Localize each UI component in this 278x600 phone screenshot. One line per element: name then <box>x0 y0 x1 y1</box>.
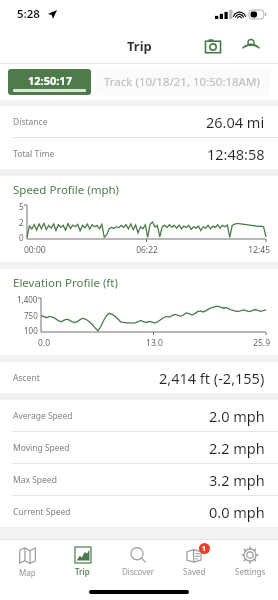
staticText: 5 <box>19 201 24 212</box>
staticText: 0.0 <box>38 337 116 349</box>
staticText: Elevation Profile (ft) <box>13 275 118 291</box>
button[interactable]: 12:50:17 <box>8 69 91 95</box>
button[interactable]: Discover <box>110 540 166 584</box>
staticText: 2.2 mph <box>209 438 265 458</box>
button[interactable]: Distance <box>0 106 278 138</box>
staticText: Saved <box>183 566 206 577</box>
staticText: 26.04 mi <box>206 112 265 132</box>
staticText: Trip <box>75 566 90 577</box>
staticText: 0.0 mph <box>209 502 265 522</box>
staticText: Ascent <box>13 372 40 384</box>
staticText: Map <box>19 567 36 578</box>
staticText: 12:48:58 <box>207 144 265 164</box>
button[interactable]: Map <box>0 540 55 584</box>
staticText: Discover <box>122 566 155 577</box>
staticText: 100 <box>24 325 38 336</box>
staticText: 1 <box>202 544 207 554</box>
staticText: 5:28 <box>17 6 40 22</box>
staticText: Distance <box>13 116 48 128</box>
staticText: 12:50:17 <box>28 73 72 88</box>
staticText: Total Time <box>13 148 55 160</box>
staticText: Current Speed <box>13 506 71 518</box>
button[interactable]: Moving Speed <box>0 432 278 464</box>
button[interactable]: Total Time <box>0 138 278 169</box>
staticText: Max Speed <box>13 474 57 486</box>
staticText: Moving Speed <box>13 442 70 454</box>
button[interactable]: Track (10/18/21, 10:50:18AM) <box>96 69 270 95</box>
staticText: 25.9 <box>193 337 270 349</box>
button[interactable]: Average Speed <box>0 400 278 432</box>
staticText: 0 <box>19 232 24 243</box>
staticText: Average Speed <box>13 410 73 422</box>
staticText: Settings <box>235 566 266 577</box>
button[interactable]: Settings <box>222 540 278 584</box>
staticText: 00:00 <box>24 244 106 256</box>
staticText: 1,400 <box>17 294 38 305</box>
button[interactable]: Locate me <box>238 33 264 59</box>
staticText: 750 <box>24 310 38 321</box>
staticText: Speed Profile (mph) <box>13 182 120 198</box>
staticText: 2 <box>19 217 24 228</box>
button[interactable]: 1 <box>166 540 222 584</box>
staticText: 06:22 <box>106 244 188 256</box>
staticText: 12:45 <box>188 244 270 256</box>
button[interactable]: Max Speed <box>0 464 278 496</box>
staticText: 2,414 ft (-2,155) <box>159 368 265 388</box>
button[interactable]: Trip <box>55 540 110 584</box>
button[interactable]: Camera <box>200 33 226 59</box>
button[interactable]: Current Speed <box>0 496 278 527</box>
staticText: Trip <box>127 37 152 55</box>
staticText: 3.2 mph <box>209 470 265 490</box>
staticText: Track (10/18/21, 10:50:18AM) <box>104 74 260 90</box>
button[interactable]: Ascent <box>0 362 278 393</box>
staticText: 2.0 mph <box>209 406 265 426</box>
staticText: 13.0 <box>116 337 193 349</box>
